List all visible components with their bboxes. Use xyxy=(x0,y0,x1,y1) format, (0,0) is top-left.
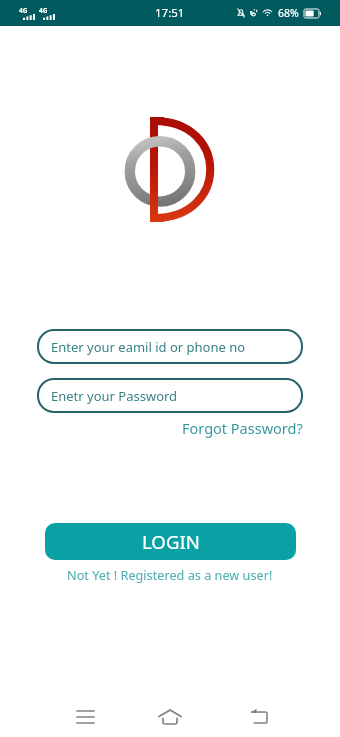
staticText: 4G xyxy=(39,6,48,15)
button[interactable]: Back xyxy=(235,697,283,737)
staticText: 4G xyxy=(19,6,28,15)
button[interactable]: Enter your eamil id or phone no xyxy=(37,329,303,364)
staticText: 17:51 xyxy=(155,5,185,21)
staticText: Enter your eamil id or phone no xyxy=(51,338,246,356)
button[interactable]: Forgot Password? xyxy=(182,418,303,438)
staticText: Enetr your Password xyxy=(51,387,178,405)
staticText: Not Yet ! Registered as a new user! xyxy=(67,566,273,583)
button[interactable]: LOGIN xyxy=(45,523,296,560)
staticText: Forgot Password? xyxy=(182,418,303,438)
button[interactable]: Recent apps xyxy=(61,697,109,737)
staticText: 68% xyxy=(278,6,299,20)
button[interactable]: Not Yet ! Registered as a new user! xyxy=(67,566,273,583)
button[interactable]: Home xyxy=(146,697,194,737)
button[interactable]: Enetr your Password xyxy=(37,378,303,413)
staticText: LOGIN xyxy=(142,529,200,554)
